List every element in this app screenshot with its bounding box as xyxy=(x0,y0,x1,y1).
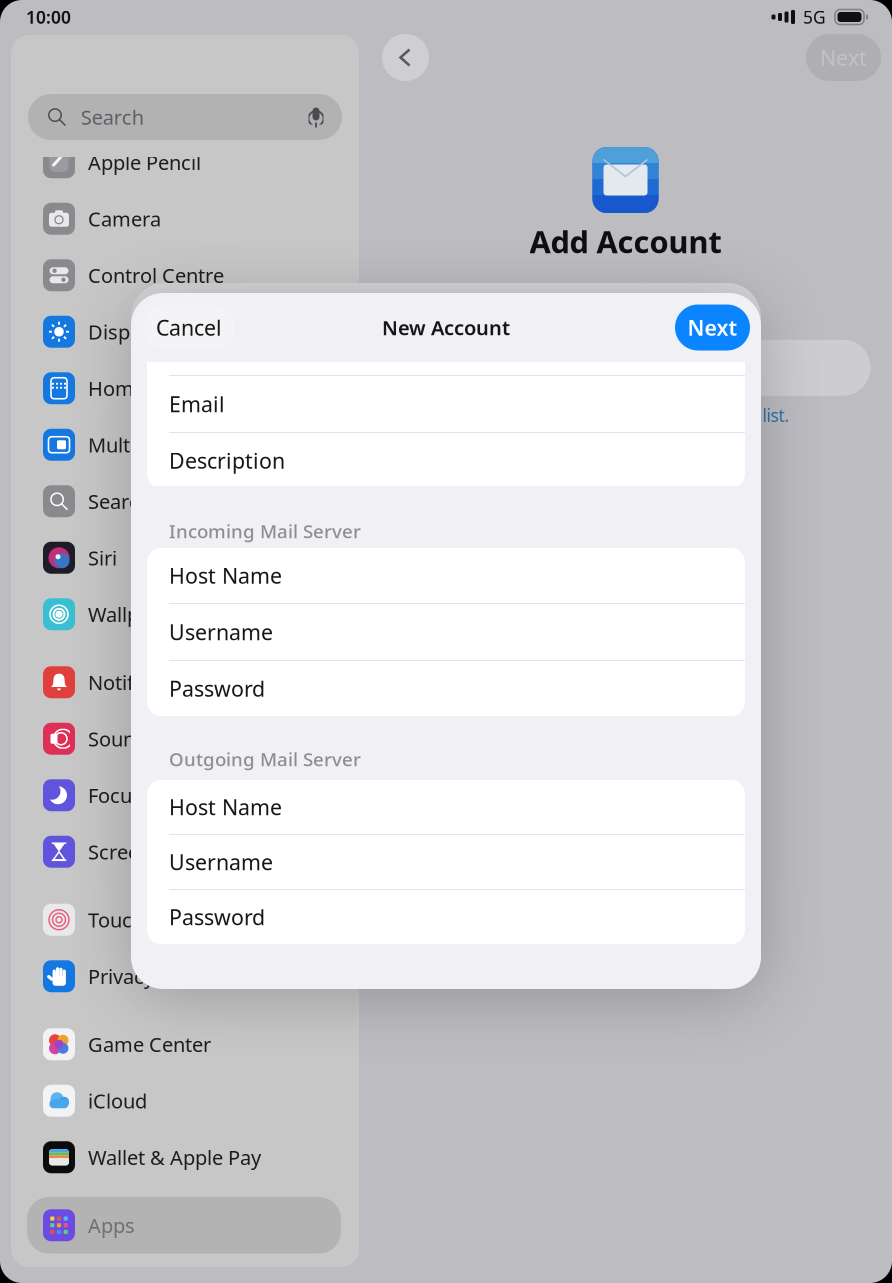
staticText: Outgoing Mail Server xyxy=(169,747,361,771)
staticText: Unable to verify account. Add it to your… xyxy=(437,404,789,427)
button[interactable]: Search xyxy=(27,473,341,529)
staticText: Control Centre xyxy=(88,262,224,289)
staticText: Sounds & Haptics xyxy=(88,725,252,752)
staticText: Apple Pencil xyxy=(88,149,201,176)
button[interactable]: Apple Pencil xyxy=(27,134,341,190)
button[interactable]: Host Name xyxy=(147,780,745,834)
staticText: Multitasking & Gestures xyxy=(88,431,312,458)
button[interactable]: Username xyxy=(147,835,745,889)
staticText: Password xyxy=(169,674,265,703)
button[interactable]: Notifications xyxy=(27,654,341,710)
button[interactable]: Wallpaper xyxy=(27,586,341,642)
button[interactable]: Siri xyxy=(27,529,341,586)
button[interactable]: Host Name xyxy=(147,548,745,603)
staticText: Search xyxy=(88,488,151,515)
staticText: Host Name xyxy=(169,793,282,821)
button[interactable]: Password xyxy=(147,661,745,716)
staticText: Privacy & Security xyxy=(88,963,253,990)
button[interactable]: Username xyxy=(147,604,745,660)
button[interactable]: Description xyxy=(147,433,745,488)
button[interactable]: Game Center xyxy=(27,1016,341,1072)
staticText: Screen Time xyxy=(88,838,202,865)
button[interactable]: Screen Time xyxy=(27,823,341,880)
staticText: Incoming Mail Server xyxy=(169,519,361,543)
staticText: Search xyxy=(81,104,144,130)
button[interactable]: Email xyxy=(147,376,745,432)
staticText: Password xyxy=(169,903,265,931)
button[interactable]: Touch ID & Passcode xyxy=(27,891,341,948)
button[interactable]: Home Screen & App Library xyxy=(27,360,341,416)
staticText: New Account xyxy=(382,314,510,341)
button[interactable]: Cancel xyxy=(143,304,235,350)
button[interactable]: iCloud xyxy=(27,1072,341,1129)
staticText: Wallet & Apple Pay xyxy=(88,1144,261,1171)
staticText: Email xyxy=(169,390,225,418)
staticText: Add Account xyxy=(529,221,721,262)
staticText: Touch ID & Passcode xyxy=(88,906,284,933)
staticText: Cancel xyxy=(156,313,222,342)
button[interactable]: Back xyxy=(382,34,429,81)
button[interactable]: Password xyxy=(147,890,745,944)
staticText: Notifications xyxy=(88,669,206,696)
staticText: Display & Brightness xyxy=(88,318,281,345)
staticText: Focus xyxy=(88,782,142,809)
staticText: Game Center xyxy=(88,1031,211,1058)
button[interactable]: Control Centre xyxy=(27,247,341,303)
button[interactable]: Camera xyxy=(27,190,341,247)
button[interactable]: Sounds & Haptics xyxy=(27,710,341,767)
staticText: Description xyxy=(169,446,285,475)
button[interactable]: Display & Brightness xyxy=(27,303,341,360)
staticText: Next xyxy=(687,313,737,342)
button[interactable]: Apps xyxy=(27,1197,341,1253)
staticText: Next xyxy=(820,43,867,72)
staticText: 5G xyxy=(803,5,826,28)
staticText: Camera xyxy=(88,205,161,232)
staticText: Host Name xyxy=(169,561,282,590)
staticText: 10:00 xyxy=(26,5,71,28)
staticText: Home Screen & App Library xyxy=(88,375,344,402)
staticText: Wallpaper xyxy=(88,601,181,628)
button[interactable]: Next xyxy=(806,34,881,81)
staticText: Username xyxy=(169,618,273,646)
button[interactable]: Wallet & Apple Pay xyxy=(27,1129,341,1185)
staticText: Siri xyxy=(88,544,117,571)
button[interactable]: Privacy & Security xyxy=(27,948,341,1004)
staticText: Username xyxy=(169,848,273,876)
staticText: Apps xyxy=(88,1212,135,1239)
staticText: iCloud xyxy=(88,1087,147,1114)
button[interactable]: Multitasking & Gestures xyxy=(27,416,341,473)
button[interactable]: Focus xyxy=(27,767,341,823)
button[interactable]: Next xyxy=(675,304,750,350)
